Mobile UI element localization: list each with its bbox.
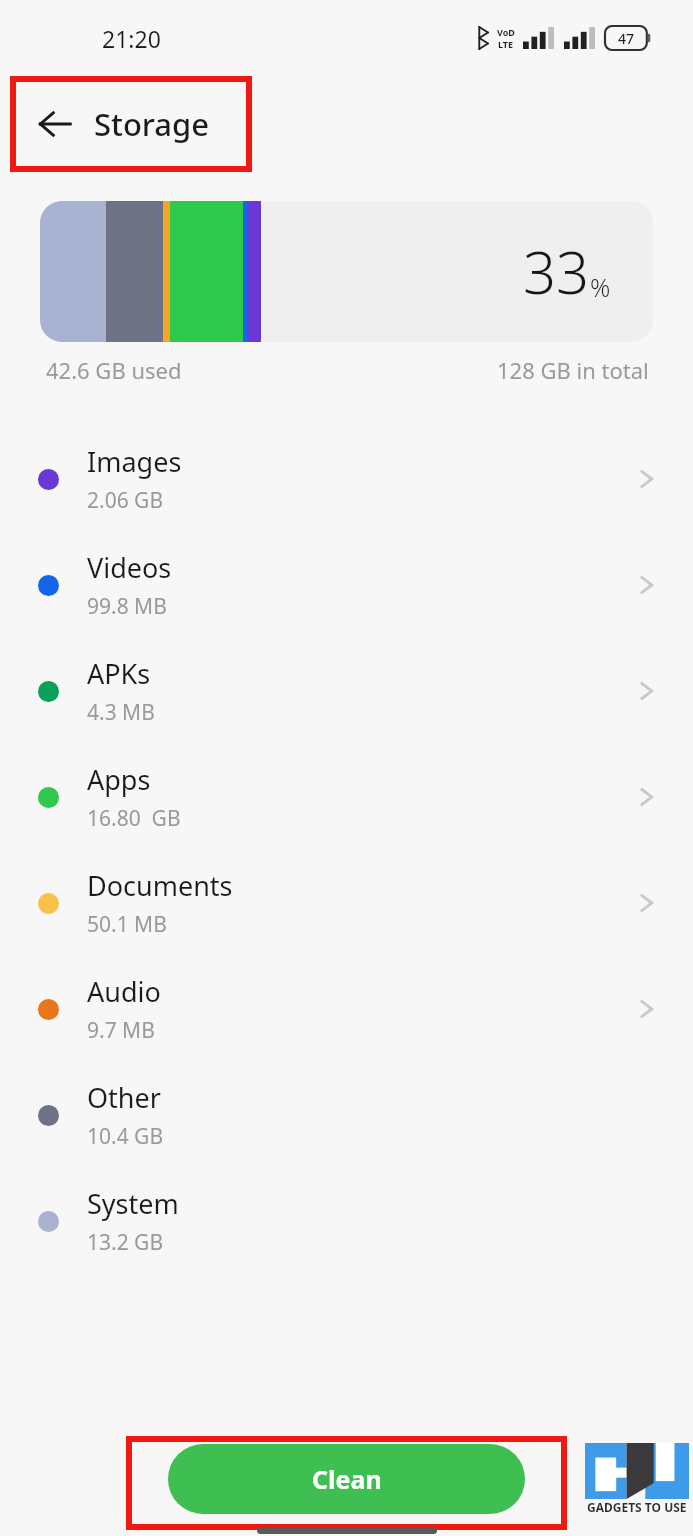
staticText: 99.8 MB: [87, 592, 167, 621]
staticText: LTE: [498, 38, 514, 50]
button[interactable]: Apps: [0, 744, 693, 850]
button[interactable]: Videos: [0, 532, 693, 638]
staticText: 21:20: [102, 23, 161, 54]
staticText: 128 GB in total: [497, 355, 649, 385]
staticText: 16.80 GB: [87, 804, 181, 833]
staticText: Videos: [87, 549, 172, 586]
staticText: 50.1 MB: [87, 910, 167, 939]
staticText: System: [87, 1185, 179, 1222]
staticText: GADGETS TO USE: [587, 1499, 687, 1515]
staticText: 33: [523, 232, 590, 311]
button[interactable]: System: [0, 1168, 693, 1274]
button[interactable]: Other: [0, 1062, 693, 1168]
staticText: Images: [87, 443, 182, 480]
button[interactable]: Audio: [0, 956, 693, 1062]
staticText: Other: [87, 1079, 161, 1116]
button[interactable]: APKs: [0, 638, 693, 744]
staticText: VoD: [497, 26, 515, 38]
staticText: %: [590, 270, 611, 304]
staticText: 10.4 GB: [87, 1122, 164, 1151]
staticText: Documents: [87, 867, 233, 904]
button[interactable]: Images: [0, 426, 693, 532]
staticText: 2.06 GB: [87, 486, 164, 515]
staticText: 42.6 GB used: [46, 355, 182, 385]
staticText: APKs: [87, 655, 151, 692]
staticText: Clean: [312, 1462, 382, 1496]
staticText: 13.2 GB: [87, 1228, 164, 1257]
staticText: 4.3 MB: [87, 698, 155, 727]
staticText: 47: [618, 29, 635, 48]
button[interactable]: Back: [24, 93, 86, 155]
staticText: Apps: [87, 761, 151, 798]
button[interactable]: Documents: [0, 850, 693, 956]
staticText: Audio: [87, 973, 161, 1010]
staticText: 9.7 MB: [87, 1016, 155, 1045]
staticText: Storage: [94, 103, 210, 145]
button[interactable]: Clean: [168, 1444, 525, 1514]
